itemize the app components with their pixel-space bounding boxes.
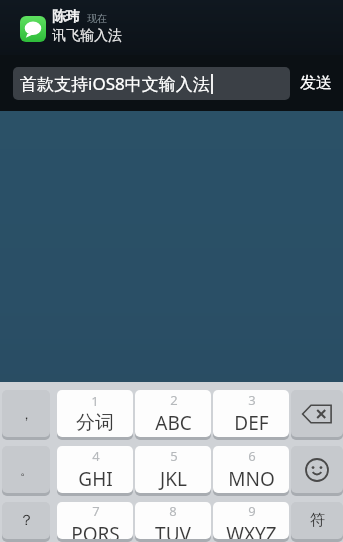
button[interactable]: 2 [135,390,211,440]
staticText: 首款支持iOS8中文输入法 [20,72,210,95]
staticText: 3 [248,391,256,409]
button[interactable]: 5 [135,446,211,496]
staticText: 2 [170,391,178,409]
staticText: DEF [234,410,269,436]
staticText: 陈玮 [52,8,80,26]
staticText: ， [20,406,33,422]
button[interactable]: 6 [213,446,289,496]
button[interactable]: ， [2,390,50,440]
button[interactable]: ？ [2,502,50,542]
button[interactable]: 4 [57,446,133,496]
staticText: 7 [92,502,100,520]
button[interactable]: Emoji [291,446,343,496]
staticText: 4 [92,447,100,465]
staticText: TUV [155,521,191,539]
button[interactable]: 7 [57,502,133,542]
button[interactable]: 9 [213,502,289,542]
staticText: 8 [169,502,177,520]
staticText: 符 [310,511,325,530]
button[interactable]: Delete [291,390,343,440]
staticText: 1 [91,392,99,410]
button[interactable]: 8 [135,502,211,542]
staticText: 。 [20,462,33,478]
staticText: ABC [155,410,192,436]
staticText: JKL [160,466,187,492]
staticText: 发送 [300,73,332,93]
staticText: 讯飞输入法 [52,27,122,45]
staticText: 现在 [87,12,107,25]
button[interactable]: 3 [213,390,289,440]
button[interactable]: 发送 [300,63,332,103]
button[interactable]: 陈玮 [0,0,343,55]
button[interactable]: 符 [291,502,343,542]
staticText: GHI [78,466,113,492]
button[interactable]: 1 [57,390,133,440]
staticText: WXYZ [226,521,277,539]
staticText: PQRS [71,521,120,539]
staticText: 9 [248,502,256,520]
staticText: 分词 [76,411,114,435]
staticText: 6 [248,447,256,465]
staticText: 5 [170,447,178,465]
button[interactable]: 。 [2,446,50,496]
button[interactable]: 首款支持iOS8中文输入法 [13,67,290,100]
staticText: ？ [19,511,34,530]
staticText: MNO [228,466,275,492]
